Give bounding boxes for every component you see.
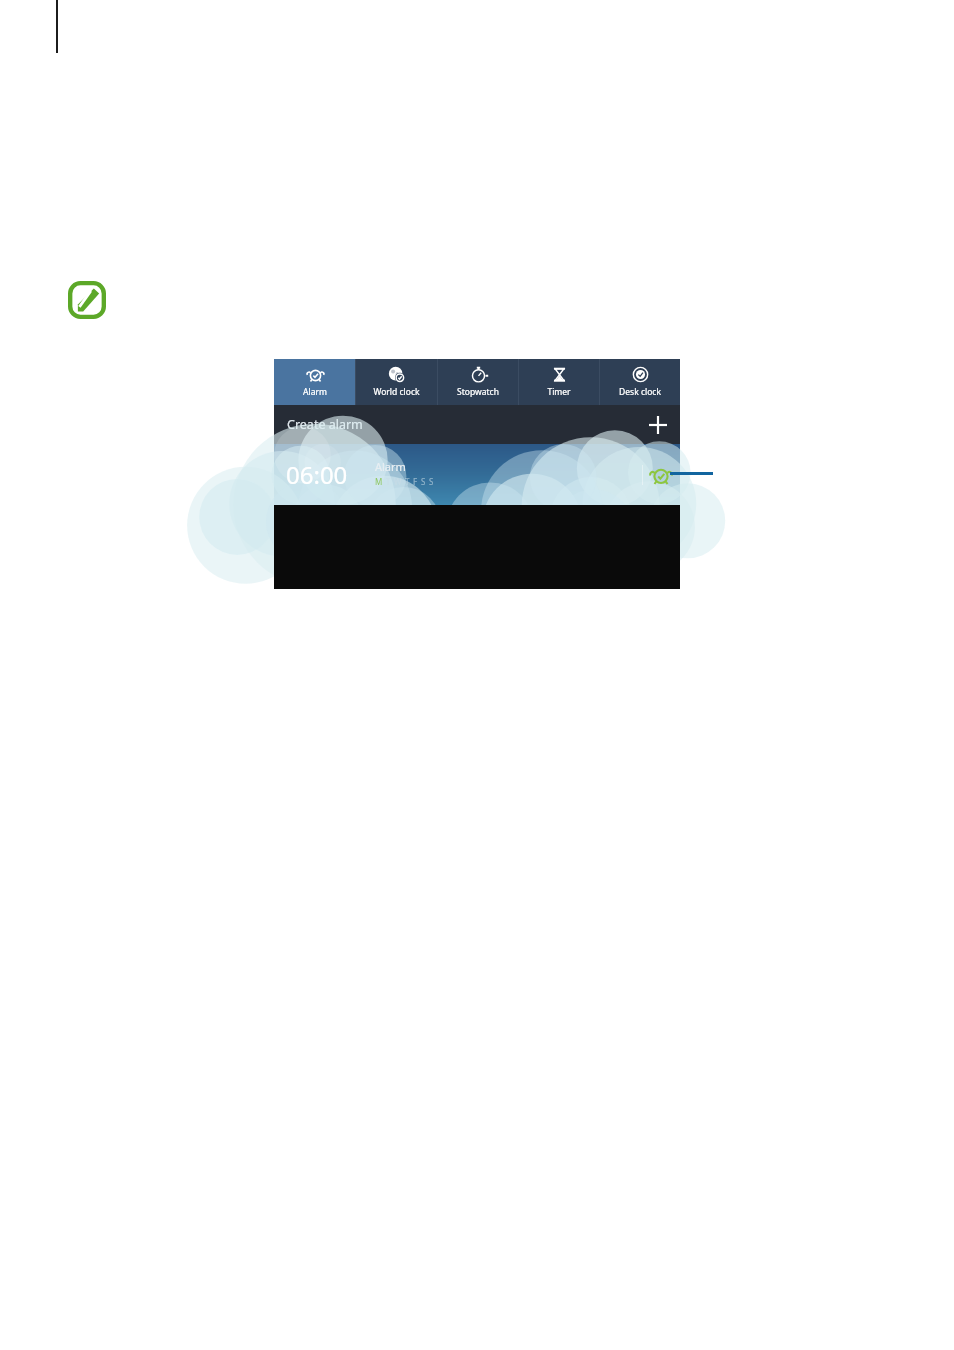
staticText: F <box>413 476 418 487</box>
staticText: M <box>375 476 383 487</box>
staticText: S <box>421 476 426 487</box>
staticText: W <box>394 476 402 487</box>
button[interactable]: Alarm on <box>650 464 672 486</box>
button[interactable]: Timer <box>519 359 599 405</box>
button[interactable]: World clock <box>356 359 437 405</box>
staticText: Alarm <box>375 459 406 474</box>
staticText: S <box>429 476 434 487</box>
staticText: 06:00 <box>286 458 348 491</box>
button[interactable]: Desk clock <box>600 359 680 405</box>
button[interactable]: Alarm <box>274 359 355 405</box>
staticText: Alarm <box>303 386 327 398</box>
staticText: Create alarm <box>287 416 363 433</box>
staticText: Stopwatch <box>457 386 499 398</box>
button[interactable]: 06:00 <box>274 444 680 505</box>
staticText: T <box>405 476 410 487</box>
button[interactable]: Create alarm <box>274 405 680 444</box>
other: Add alarm <box>648 415 668 435</box>
button[interactable]: Stopwatch <box>438 359 518 405</box>
staticText: World clock <box>373 386 420 398</box>
staticText: Timer <box>547 386 571 398</box>
staticText: Desk clock <box>619 386 661 398</box>
